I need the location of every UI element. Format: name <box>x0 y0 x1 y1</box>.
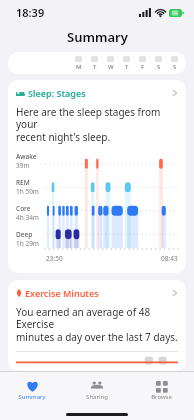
other: Exercise <box>16 289 22 297</box>
staticText: Core <box>16 204 31 213</box>
staticText: 18:39 <box>16 5 45 20</box>
staticText: S <box>173 63 177 71</box>
staticText: 08:43 <box>161 254 178 263</box>
button[interactable]: Browse <box>129 372 194 408</box>
staticText: 1h 50m <box>16 187 39 196</box>
staticText: 39m <box>16 161 30 170</box>
staticText: 4h 34m <box>16 213 39 222</box>
staticText: W <box>108 63 114 71</box>
staticText: T <box>125 63 129 71</box>
staticText: REM <box>16 178 30 187</box>
button[interactable]: Exercise <box>16 287 178 299</box>
staticText: S <box>157 63 161 71</box>
other: Sleep <box>16 90 25 97</box>
staticText: 1h 29m <box>16 239 39 248</box>
staticText: Summary <box>67 28 128 46</box>
staticText: M <box>76 63 82 71</box>
button[interactable]: Sleep <box>16 87 178 99</box>
staticText: Exercise Minutes <box>25 287 99 299</box>
staticText: T <box>93 63 97 71</box>
staticText: Sleep: Stages <box>28 87 86 99</box>
staticText: F <box>141 63 145 71</box>
staticText: Summary <box>18 393 46 401</box>
staticText: Deep <box>16 230 33 239</box>
button[interactable]: Sharing <box>64 372 129 408</box>
staticText: Awake <box>16 152 37 161</box>
staticText: You earned an average of 48 Exercise min… <box>16 305 178 344</box>
staticText: Browse <box>151 393 172 401</box>
button[interactable]: Sleep <box>8 80 186 273</box>
button[interactable]: Summary <box>0 372 64 408</box>
staticText: Here are the sleep stages from your rece… <box>16 105 178 144</box>
staticText: 23:50 <box>46 254 63 263</box>
button[interactable]: Exercise <box>8 280 186 371</box>
button[interactable]: M <box>8 52 186 74</box>
staticText: Sharing <box>86 393 108 401</box>
